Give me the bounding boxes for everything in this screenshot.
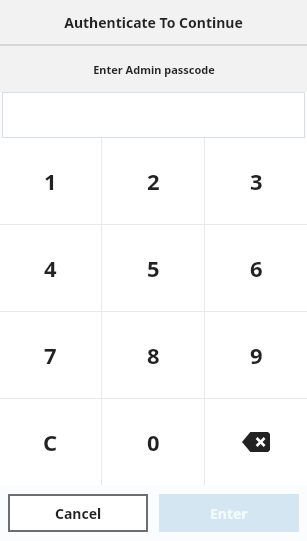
button[interactable]: C	[0, 399, 101, 485]
staticText: Enter Admin passcode	[93, 62, 215, 77]
staticText: Cancel	[55, 504, 102, 523]
staticText: 1	[44, 166, 57, 196]
staticText: Enter	[210, 504, 248, 523]
staticText: 2	[147, 166, 160, 196]
button[interactable]: 0	[102, 399, 204, 485]
staticText: 5	[147, 253, 160, 283]
button[interactable]: Backspace	[205, 399, 307, 485]
button[interactable]: 8	[102, 312, 204, 398]
staticText: Authenticate To Continue	[64, 13, 243, 32]
staticText: 8	[147, 340, 160, 370]
staticText: 4	[44, 253, 57, 283]
button[interactable]: 7	[0, 312, 101, 398]
button[interactable]: 2	[102, 138, 204, 224]
staticText: 9	[250, 340, 263, 370]
button[interactable]: 5	[102, 225, 204, 311]
staticText: C	[43, 427, 58, 457]
button[interactable]: 4	[0, 225, 101, 311]
staticText: 7	[44, 340, 57, 370]
staticText: 6	[250, 253, 263, 283]
button[interactable]: 3	[205, 138, 307, 224]
button[interactable]: 6	[205, 225, 307, 311]
button[interactable]: 1	[0, 138, 101, 224]
button[interactable]: 9	[205, 312, 307, 398]
staticText: 3	[250, 166, 263, 196]
button[interactable]: Cancel	[8, 494, 148, 532]
staticText: 0	[147, 427, 160, 457]
button[interactable]: Enter	[159, 494, 299, 532]
